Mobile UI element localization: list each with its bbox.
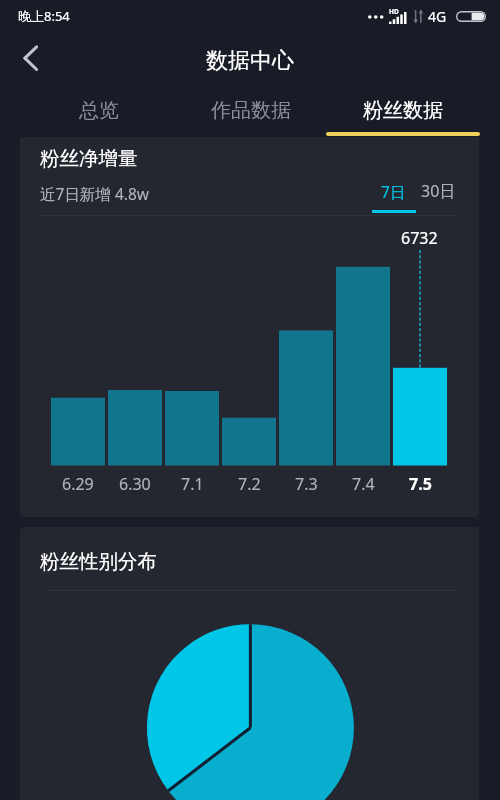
staticText: 粉丝数据 (363, 98, 443, 123)
staticText: 7日 (381, 181, 406, 202)
staticText: 7.3 (295, 473, 318, 495)
staticText: 7.2 (238, 473, 261, 495)
staticText: 7.5 (409, 473, 432, 495)
staticText: 6.30 (119, 473, 151, 495)
button[interactable]: 30日 (411, 175, 465, 207)
staticText: 7.1 (181, 473, 204, 495)
button[interactable]: 7日 (369, 175, 417, 207)
staticText: 总览 (79, 98, 119, 123)
button[interactable]: 总览 (23, 89, 175, 132)
staticText: 数据中心 (206, 47, 294, 75)
staticText: 近7日新增 4.8w (40, 183, 149, 204)
button[interactable]: 作品数据 (175, 89, 327, 132)
button[interactable]: 粉丝数据 (327, 89, 479, 132)
staticText: 6732 (401, 227, 438, 249)
staticText: HD (389, 7, 399, 16)
button[interactable]: Back (5, 33, 57, 83)
staticText: 4G (428, 7, 447, 26)
staticText: 7.4 (352, 473, 375, 495)
staticText: 6.29 (62, 473, 94, 495)
staticText: 30日 (421, 180, 456, 202)
staticText: 粉丝净增量 (40, 146, 138, 171)
staticText: 晚上8:54 (18, 7, 70, 25)
staticText: 作品数据 (211, 98, 291, 123)
staticText: 粉丝性别分布 (40, 549, 157, 574)
